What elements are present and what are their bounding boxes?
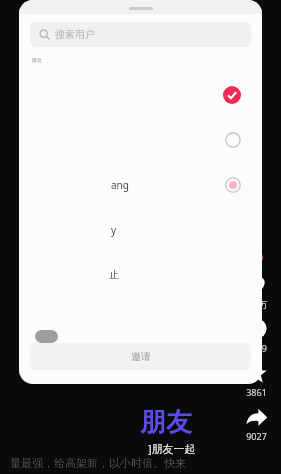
button[interactable]: y bbox=[19, 207, 262, 252]
button[interactable]: ang bbox=[19, 162, 262, 207]
staticText: ang bbox=[111, 178, 129, 192]
button[interactable]: Like bbox=[243, 274, 270, 310]
button[interactable] bbox=[19, 117, 262, 162]
staticText: 4.7万 bbox=[246, 298, 268, 310]
staticText: 止 bbox=[109, 268, 119, 281]
button[interactable]: 邀请 bbox=[30, 343, 251, 370]
staticText: 3861 bbox=[246, 386, 267, 398]
button[interactable]: Comment bbox=[243, 318, 270, 354]
staticText: ]朋友一起 bbox=[148, 441, 196, 456]
staticText: 邀请 bbox=[131, 350, 151, 363]
staticText: 8249 bbox=[246, 342, 267, 354]
staticText: 最近 bbox=[32, 57, 42, 63]
button[interactable]: Share bbox=[243, 406, 270, 442]
staticText: 朋友 bbox=[140, 406, 192, 439]
button[interactable] bbox=[19, 72, 262, 117]
button[interactable]: Favorite bbox=[243, 362, 270, 398]
button[interactable]: Follow author bbox=[243, 238, 269, 264]
staticText: y bbox=[111, 223, 117, 237]
button[interactable]: 搜索用户 bbox=[30, 22, 251, 47]
staticText: 搜索用户 bbox=[55, 28, 95, 41]
staticText: 9027 bbox=[246, 430, 267, 442]
button[interactable]: 止 bbox=[19, 252, 262, 297]
staticText: 量最强，给高架新，以小时倍。快来 bbox=[10, 456, 186, 470]
